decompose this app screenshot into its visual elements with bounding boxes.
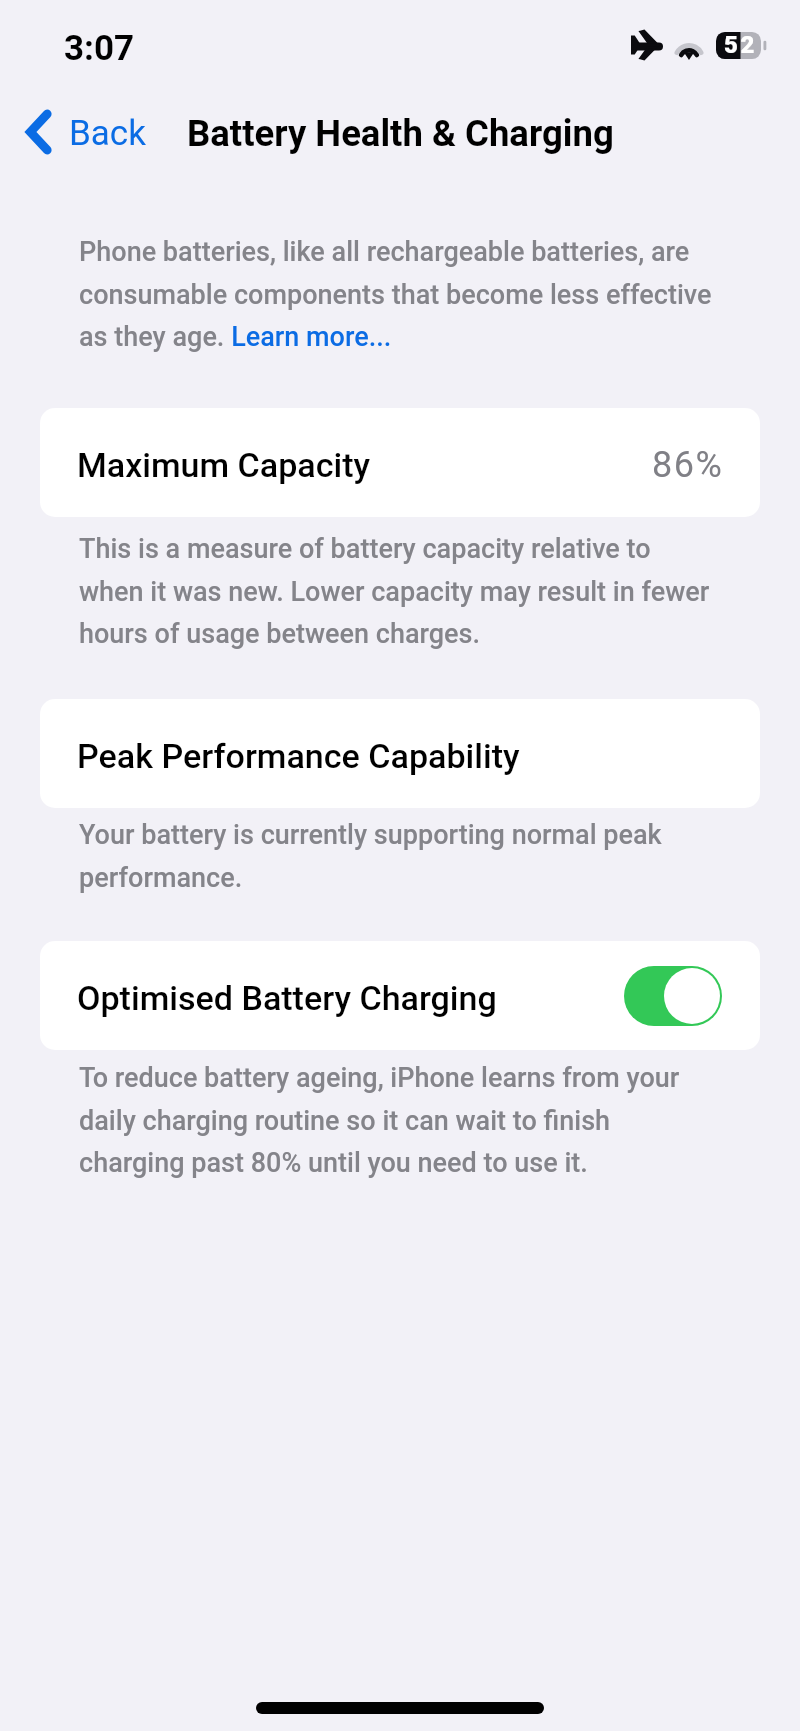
- other: Back: [22, 110, 50, 154]
- staticText: Phone batteries, like all rechargeable b…: [79, 236, 719, 352]
- staticText: Maximum Capacity: [77, 445, 371, 485]
- staticText: To reduce battery ageing, iPhone learns …: [79, 1062, 719, 1178]
- staticText: Battery Health & Charging: [187, 112, 614, 155]
- staticText: Back: [69, 113, 146, 154]
- button[interactable]: Peak Performance Capability: [40, 699, 760, 808]
- staticText: Your battery is currently supporting nor…: [79, 819, 719, 893]
- button[interactable]: Optimised Battery Charging toggle: [624, 966, 722, 1026]
- staticText: This is a measure of battery capacity re…: [79, 533, 719, 649]
- staticText: 52: [724, 31, 757, 58]
- staticText: 86%: [652, 444, 724, 486]
- staticText: Optimised Battery Charging: [77, 978, 497, 1018]
- button[interactable]: Back: [22, 110, 146, 154]
- button[interactable]: Optimised Battery Charging: [40, 941, 760, 1050]
- staticText: Peak Performance Capability: [77, 736, 520, 776]
- staticText: 3:07: [64, 28, 135, 69]
- button[interactable]: Maximum Capacity: [40, 408, 760, 517]
